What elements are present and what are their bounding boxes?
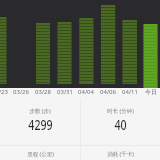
staticText: 03/28 <box>35 88 51 96</box>
staticText: 40 <box>114 115 127 133</box>
staticText: 04/06 <box>100 88 116 96</box>
button[interactable]: 里程 (公里) <box>0 148 80 160</box>
staticText: 03/26 <box>13 88 29 96</box>
staticText: 4299 <box>28 115 53 133</box>
staticText: 步数 (步) <box>29 107 51 115</box>
staticText: 消耗 (千卡) <box>107 150 134 158</box>
staticText: 04/11 <box>122 88 138 96</box>
staticText: 03/23 <box>0 88 8 96</box>
button[interactable]: 消耗 (千卡) <box>80 148 160 160</box>
staticText: 今日 <box>145 88 157 96</box>
staticText: 03/31 <box>57 88 73 96</box>
button[interactable]: 步数 (步) <box>0 100 80 140</box>
button[interactable]: 时长 (分钟) <box>80 100 160 140</box>
staticText: 里程 (公里) <box>27 150 54 158</box>
staticText: 时长 (分钟) <box>107 107 134 115</box>
button[interactable]: 今日 <box>137 88 160 96</box>
staticText: 04/04 <box>78 88 94 96</box>
